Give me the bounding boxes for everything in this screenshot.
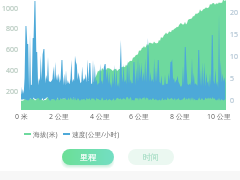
staticText: 200 <box>6 87 19 97</box>
staticText: 2 公里 <box>49 112 69 122</box>
staticText: 时间 <box>143 152 159 162</box>
staticText: 10 公里 <box>207 112 231 122</box>
button[interactable]: 里程 <box>62 149 114 165</box>
staticText: 6 公里 <box>129 112 149 122</box>
staticText: 速度(公里/小时) <box>72 130 120 139</box>
staticText: 8 公里 <box>170 112 190 122</box>
staticText: 15 <box>230 30 239 40</box>
staticText: 800 <box>6 24 19 34</box>
staticText: 4 公里 <box>90 112 110 122</box>
staticText: 里程 <box>80 152 96 162</box>
staticText: 5 <box>230 74 235 84</box>
button[interactable]: 时间 <box>128 149 174 165</box>
staticText: 600 <box>6 45 19 55</box>
staticText: 0 米 <box>15 112 28 122</box>
staticText: 0 <box>230 96 235 106</box>
staticText: 400 <box>6 66 19 76</box>
staticText: 10 <box>230 52 239 62</box>
staticText: 海拔(米) <box>33 130 58 139</box>
staticText: 20 <box>230 8 239 18</box>
staticText: 1000 <box>2 4 19 14</box>
